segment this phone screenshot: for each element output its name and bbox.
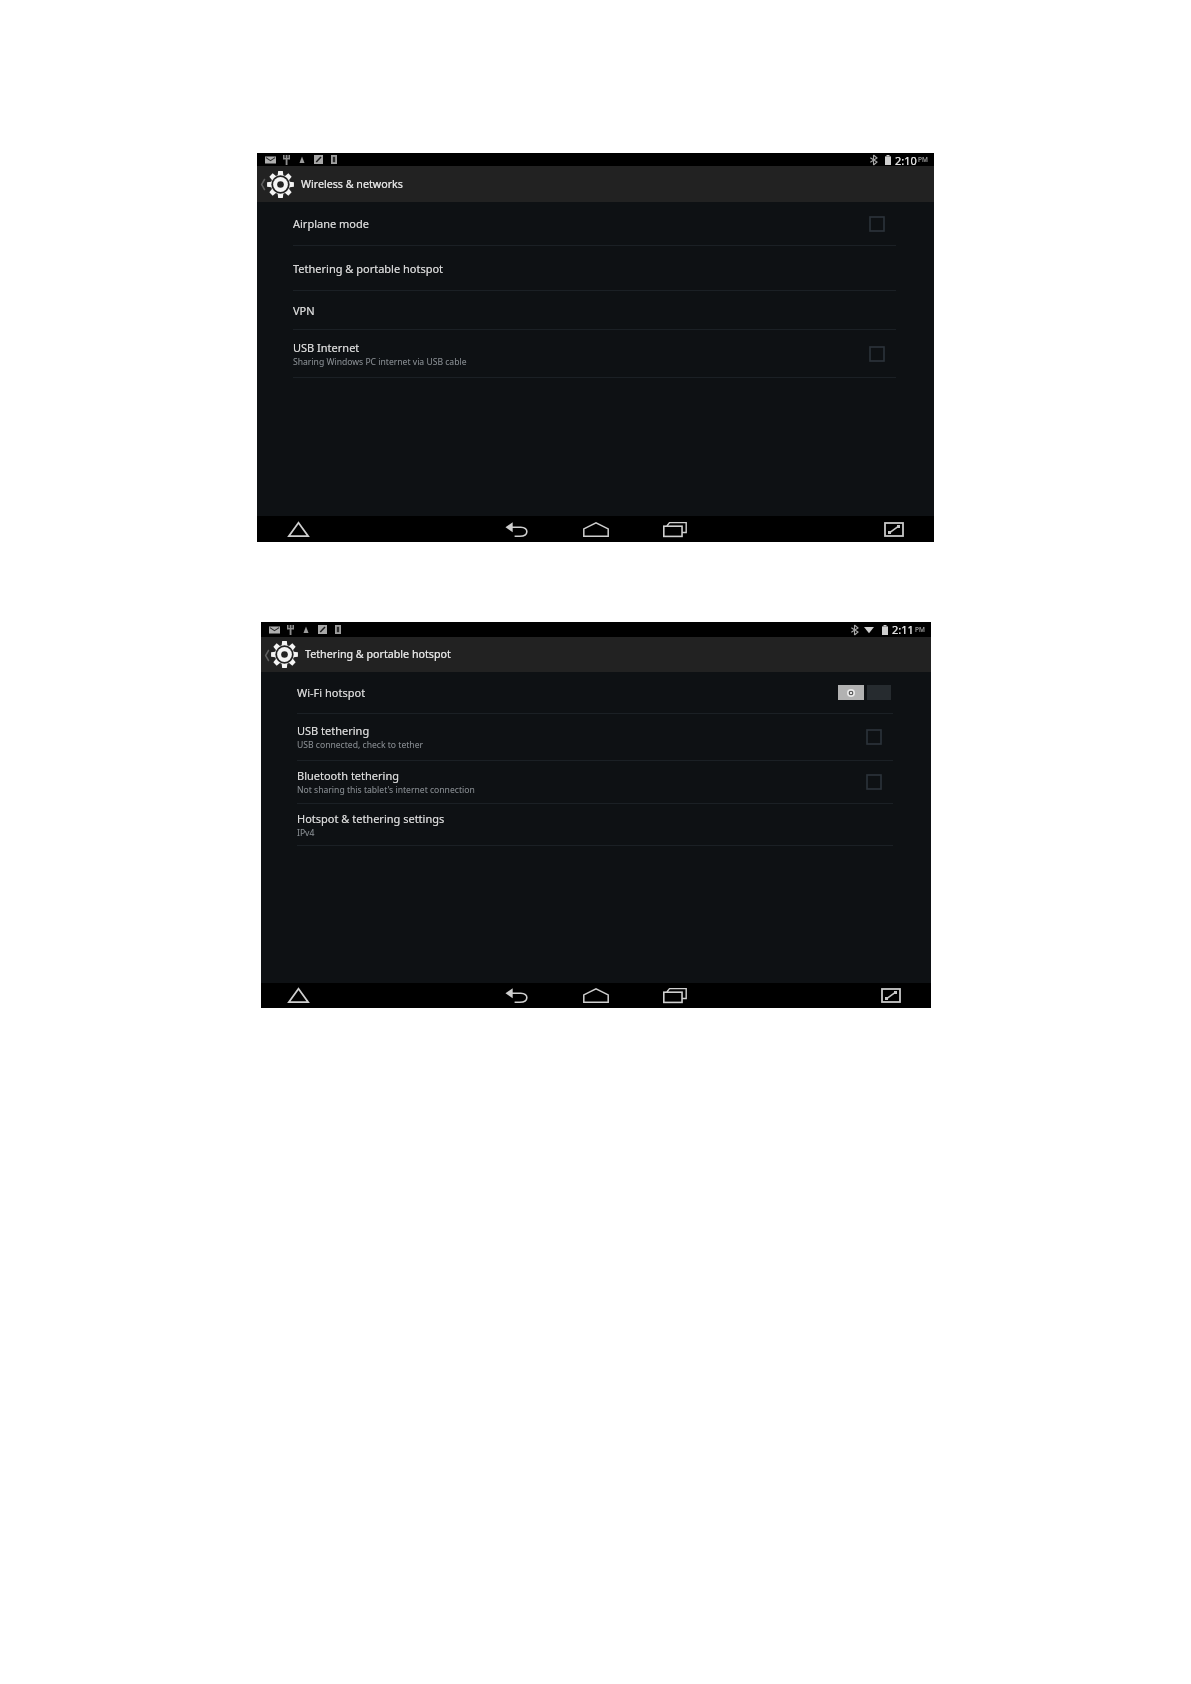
button[interactable]: Recent apps <box>660 516 690 542</box>
button[interactable]: Hotspot & tethering settings <box>261 804 931 845</box>
staticText: Wireless & networks <box>301 177 403 192</box>
staticText: IPv4 <box>297 827 315 839</box>
button[interactable]: Wi-Fi hotspot toggle <box>838 685 891 700</box>
staticText: Tethering & portable hotspot <box>293 261 444 276</box>
staticText: Wi-Fi hotspot <box>297 685 366 700</box>
staticText: Sharing Windows PC internet via USB cabl… <box>293 356 467 368</box>
button[interactable]: Back <box>502 516 532 542</box>
button[interactable]: Navigate up <box>257 166 934 202</box>
button[interactable]: Toggle USB Internet <box>865 344 889 364</box>
button[interactable]: Navigate up <box>259 173 266 195</box>
button[interactable]: Screenshot <box>879 516 909 542</box>
button[interactable]: Wi-Fi hotspot <box>261 672 931 713</box>
staticText: PM <box>915 625 925 634</box>
staticText: VPN <box>293 303 315 318</box>
button[interactable]: Show navigation bar <box>283 983 313 1008</box>
staticText: Bluetooth tethering <box>297 768 399 783</box>
button[interactable]: USB tethering <box>261 714 931 760</box>
staticText: USB Internet <box>293 340 360 355</box>
staticText: Hotspot & tethering settings <box>297 811 445 826</box>
button[interactable]: Bluetooth tethering <box>261 761 931 803</box>
button[interactable]: Tethering & portable hotspot <box>257 246 934 290</box>
staticText: PM <box>918 155 928 164</box>
button[interactable]: Recent apps <box>660 983 690 1008</box>
button[interactable]: Home <box>581 983 611 1008</box>
staticText: USB tethering <box>297 723 370 738</box>
button[interactable]: Show navigation bar <box>283 516 313 542</box>
button[interactable]: Toggle Bluetooth tethering <box>862 772 886 792</box>
staticText: Airplane mode <box>293 216 369 231</box>
button[interactable]: USB Internet <box>257 330 934 377</box>
button[interactable]: Home <box>581 516 611 542</box>
button[interactable]: Back <box>502 983 532 1008</box>
button[interactable]: Toggle Airplane mode <box>865 214 889 234</box>
staticText: 2:11 <box>892 622 914 637</box>
button[interactable]: Airplane mode <box>257 202 934 245</box>
staticText: Tethering & portable hotspot <box>305 647 451 662</box>
staticText: Not sharing this tablet's internet conne… <box>297 784 475 796</box>
button[interactable]: Screenshot <box>876 983 906 1008</box>
staticText: 2:10 <box>895 153 917 166</box>
button[interactable]: Navigate up <box>263 644 270 666</box>
button[interactable]: Toggle USB tethering <box>862 727 886 747</box>
button[interactable]: Navigate up <box>261 637 931 672</box>
staticText: USB connected, check to tether <box>297 739 424 751</box>
button[interactable]: VPN <box>257 291 934 329</box>
